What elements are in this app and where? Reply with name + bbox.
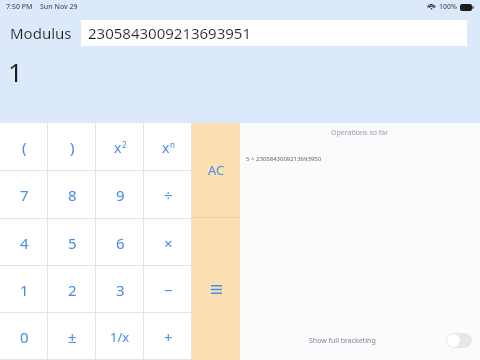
- button[interactable]: 6: [96, 219, 144, 266]
- staticText: 9: [116, 185, 125, 205]
- staticText: x: [114, 138, 122, 157]
- staticText: x: [162, 138, 170, 157]
- button[interactable]: 3: [96, 266, 144, 313]
- staticText: 100%: [439, 2, 457, 12]
- staticText: 7:50 PM: [6, 2, 33, 12]
- staticText: Sun Nov 29: [40, 2, 78, 12]
- button[interactable]: +: [144, 313, 192, 360]
- button[interactable]: 4: [0, 219, 48, 266]
- button[interactable]: 9: [96, 171, 144, 219]
- staticText: ÷: [164, 185, 173, 205]
- button[interactable]: x: [96, 123, 144, 171]
- staticText: AC: [208, 161, 225, 179]
- staticText: n: [170, 139, 175, 150]
- staticText: 1: [20, 280, 29, 300]
- button[interactable]: 0: [0, 313, 48, 360]
- button[interactable]: Menu: [192, 218, 240, 360]
- button[interactable]: x: [144, 123, 192, 171]
- button[interactable]: −: [144, 266, 192, 313]
- staticText: 3: [116, 280, 125, 300]
- button[interactable]: ÷: [144, 171, 192, 219]
- button[interactable]: 8: [48, 171, 96, 219]
- staticText: 8: [68, 185, 77, 205]
- staticText: 5 ^ 2305843009213693950: [246, 155, 322, 163]
- staticText: Operations so far: [331, 128, 389, 138]
- staticText: 6: [116, 233, 125, 253]
- button[interactable]: 2: [48, 266, 96, 313]
- staticText: +: [164, 327, 173, 347]
- staticText: 7: [20, 185, 29, 205]
- button[interactable]: ): [48, 123, 96, 171]
- staticText: 2305843009213693951: [88, 23, 252, 43]
- staticText: 1/x: [110, 328, 130, 346]
- button[interactable]: ×: [144, 219, 192, 266]
- staticText: Show full bracketing: [309, 336, 376, 346]
- staticText: 4: [20, 233, 29, 253]
- staticText: ±: [68, 327, 77, 347]
- staticText: ×: [164, 233, 173, 253]
- button[interactable]: 5: [48, 219, 96, 266]
- button[interactable]: AC: [192, 123, 240, 217]
- staticText: 1: [8, 54, 23, 89]
- staticText: 2: [68, 280, 77, 300]
- staticText: ): [70, 137, 75, 157]
- staticText: (: [22, 137, 27, 157]
- staticText: Modulus: [10, 23, 72, 43]
- button[interactable]: 2305843009213693951: [81, 20, 467, 46]
- staticText: 5: [68, 233, 77, 253]
- button[interactable]: 7: [0, 171, 48, 219]
- button[interactable]: Show full bracketing toggle: [446, 333, 472, 348]
- button[interactable]: 1: [0, 266, 48, 313]
- button[interactable]: 1/x: [96, 313, 144, 360]
- staticText: 0: [20, 327, 29, 347]
- staticText: 2: [122, 139, 127, 150]
- button[interactable]: (: [0, 123, 48, 171]
- staticText: −: [164, 280, 173, 300]
- button[interactable]: ±: [48, 313, 96, 360]
